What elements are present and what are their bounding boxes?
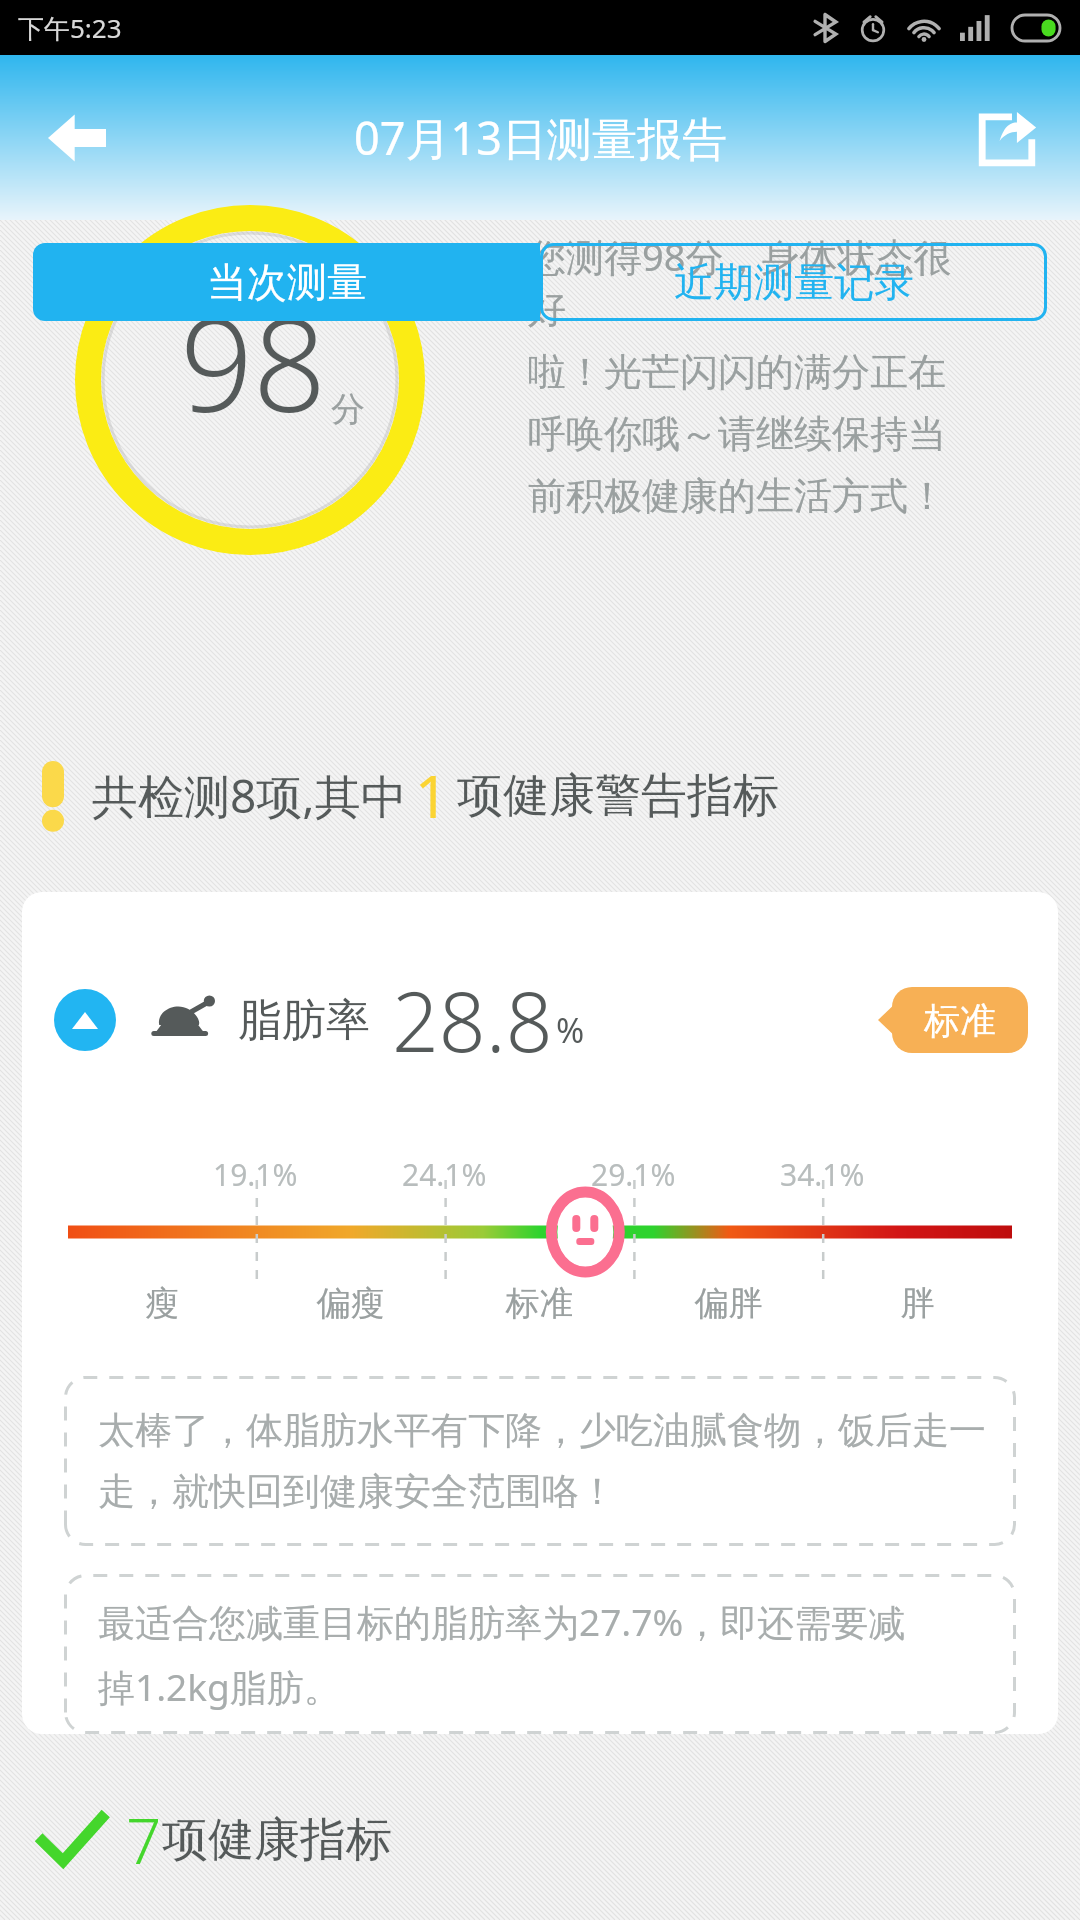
staticText: 34.1% [780, 1154, 865, 1195]
staticText: 29.1% [591, 1154, 676, 1195]
staticText: 呼唤你哦～请继续保持当 [528, 410, 946, 458]
staticText: 瘦 [68, 1282, 256, 1325]
staticText: 掉1.2kg脂肪。 [98, 1661, 341, 1712]
staticText: 项健康指标 [162, 1811, 392, 1869]
staticText: 当次测量 [207, 257, 367, 307]
button[interactable]: Back [42, 103, 112, 173]
staticText: 19.1% [213, 1154, 298, 1195]
staticText: 28.8 [392, 964, 553, 1076]
staticText: 标准 [445, 1282, 634, 1325]
staticText: 走，就快回到健康安全范围咯！ [98, 1468, 616, 1515]
staticText: 项健康警告指标 [457, 767, 779, 825]
button[interactable]: Share [970, 101, 1044, 175]
staticText: % [556, 1007, 585, 1053]
staticText: 下午5:23 [18, 10, 122, 46]
staticText: 最适合您减重目标的脂肪率为27.7%，即还需要减 [98, 1596, 906, 1647]
staticText: 脂肪率 [238, 993, 370, 1048]
staticText: 98 [180, 275, 327, 449]
staticText: 分 [331, 388, 365, 431]
button[interactable]: 当次测量 [33, 243, 540, 321]
button[interactable]: Collapse [22, 892, 1058, 1734]
staticText: 太棒了，体脂肪水平有下降，少吃油腻食物，饭后走一 [98, 1407, 986, 1454]
staticText: 偏胖 [634, 1282, 823, 1325]
button[interactable]: 近期测量记录 [540, 243, 1047, 321]
staticText: 24.1% [402, 1154, 487, 1195]
staticText: 前积极健康的生活方式！ [528, 472, 946, 520]
staticText: 7 [126, 1798, 162, 1882]
button[interactable]: Collapse [54, 989, 116, 1051]
staticText: 共检测8项,其中 [92, 764, 407, 827]
staticText: 啦！光芒闪闪的满分正在 [528, 348, 946, 396]
staticText: 1 [415, 756, 449, 835]
staticText: 07月13日测量报告 [354, 107, 727, 168]
staticText: 胖 [823, 1282, 1012, 1325]
staticText: 您测得98分，身体状态很好 [528, 230, 978, 334]
staticText: 标准 [924, 998, 996, 1043]
staticText: 近期测量记录 [674, 257, 914, 307]
staticText: 偏瘦 [256, 1282, 445, 1325]
